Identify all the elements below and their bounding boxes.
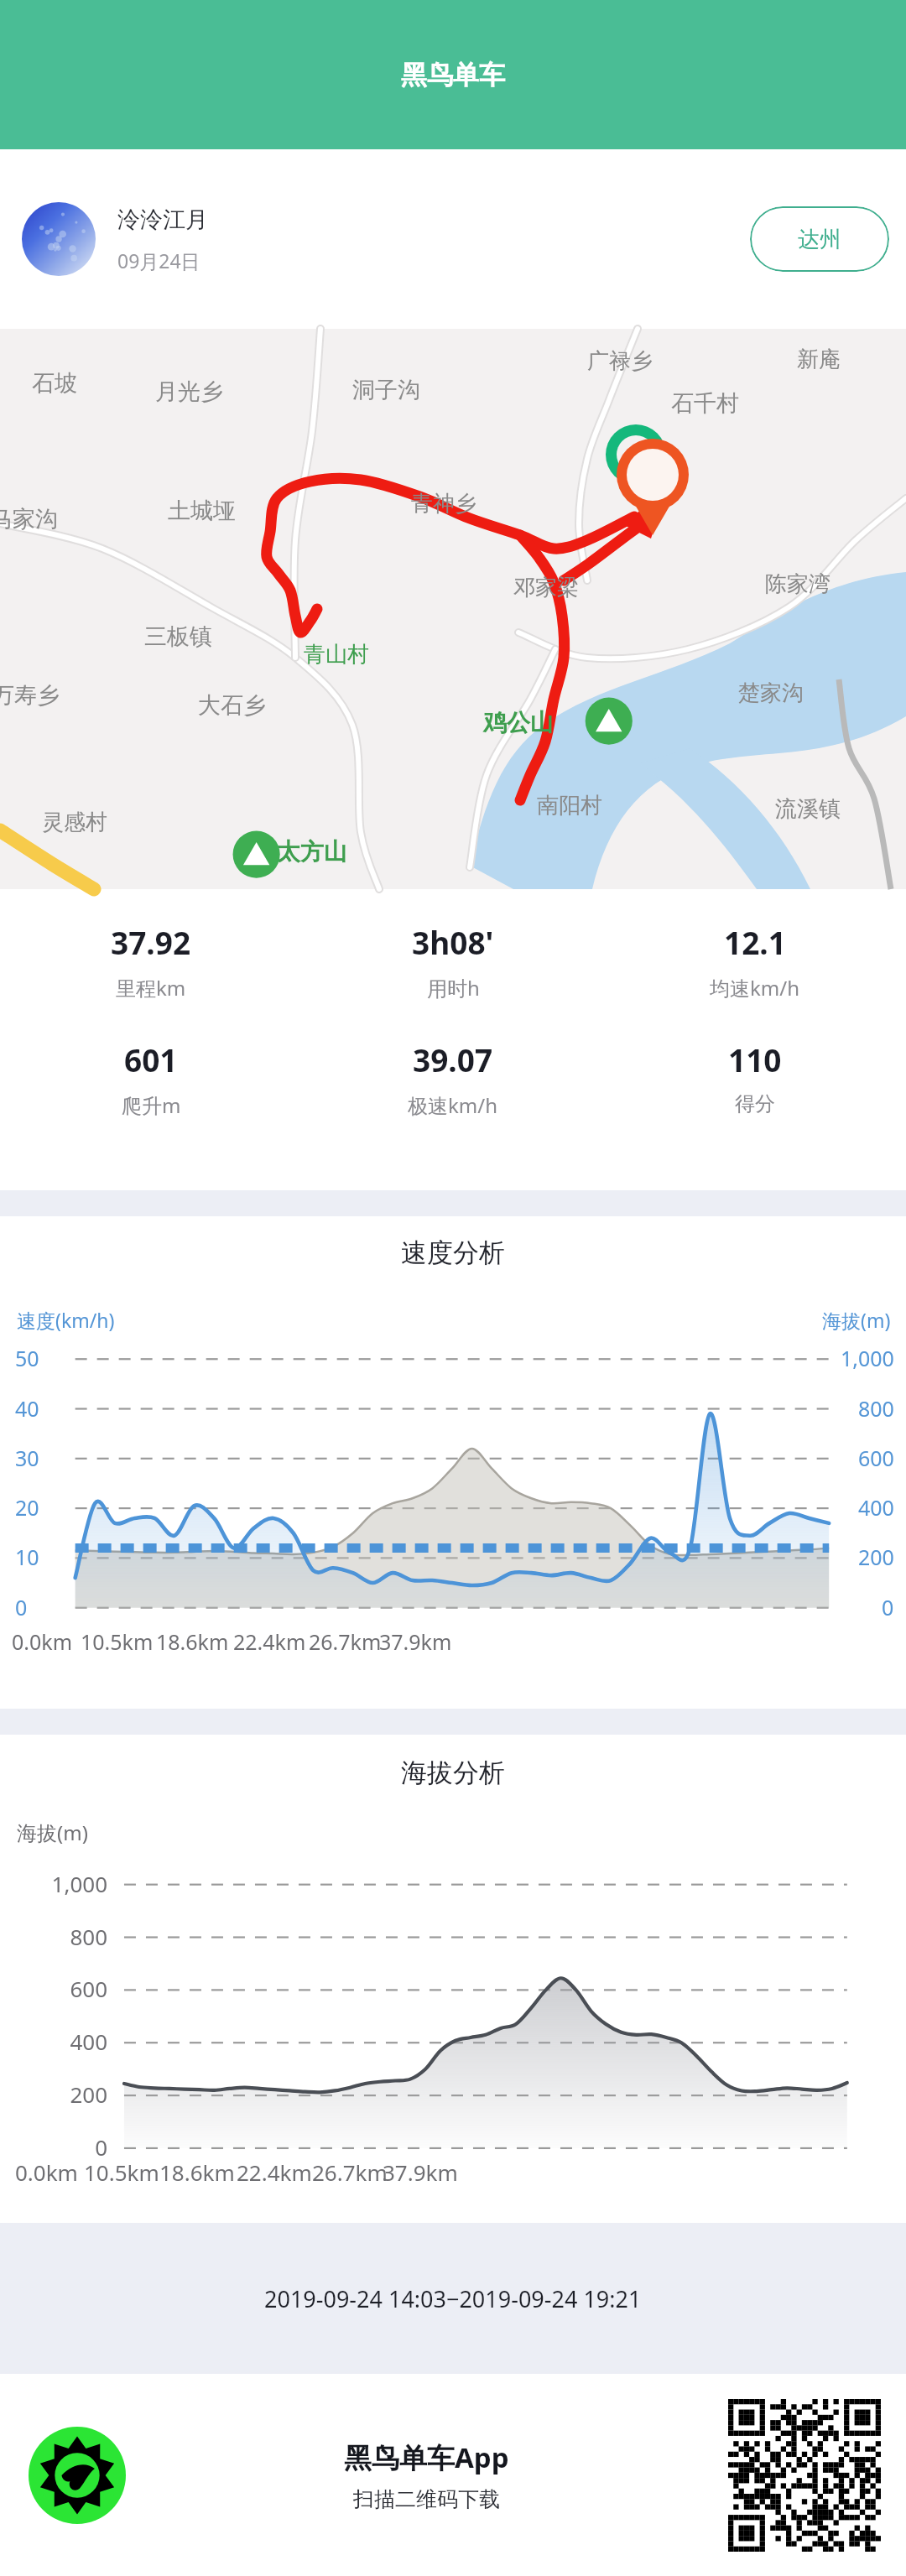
staticText: 10 <box>15 1543 39 1571</box>
staticText: 洞子沟 <box>352 376 420 404</box>
staticText: 0 <box>882 1593 894 1621</box>
staticText: 达州 <box>798 226 841 253</box>
staticText: 37.9km <box>379 1627 452 1656</box>
button[interactable]: 3h08' <box>302 921 604 1002</box>
staticText: 马家沟 <box>0 505 58 533</box>
staticText: 鸡公山 <box>483 708 554 737</box>
staticText: 海拔(m) <box>17 1819 88 1846</box>
button[interactable]: 39.07 <box>302 1038 604 1119</box>
staticText: 大石乡 <box>198 691 266 720</box>
staticText: 陈家湾 <box>765 570 830 598</box>
staticText: 26.7km <box>309 1627 382 1656</box>
staticText: 0.0km <box>12 1627 73 1656</box>
staticText: 泠泠江月 <box>117 206 208 234</box>
staticText: 扫描二维码下载 <box>353 2486 500 2512</box>
other: QR code <box>728 2399 881 2552</box>
staticText: 10.5km <box>84 2157 159 2187</box>
staticText: 均速km/h <box>710 974 800 1002</box>
staticText: 09月24日 <box>117 247 200 273</box>
staticText: 39.07 <box>413 1038 493 1080</box>
staticText: 40 <box>15 1394 39 1423</box>
staticText: 110 <box>728 1038 782 1080</box>
staticText: 800 <box>70 1922 107 1951</box>
staticText: 里程km <box>116 974 186 1002</box>
button[interactable]: 37.92 <box>0 921 302 1002</box>
staticText: 3h08' <box>412 921 494 963</box>
staticText: 爬升m <box>122 1091 181 1119</box>
staticText: 用时h <box>427 974 480 1002</box>
staticText: 400 <box>858 1493 894 1522</box>
staticText: 20 <box>15 1493 39 1522</box>
staticText: 22.4km <box>233 1627 306 1656</box>
staticText: 万寿乡 <box>0 681 60 710</box>
staticText: 1,000 <box>51 1869 107 1898</box>
staticText: 18.6km <box>156 1627 229 1656</box>
staticText: 极速km/h <box>408 1091 498 1119</box>
staticText: 新庵 <box>797 346 841 373</box>
staticText: 广禄乡 <box>587 347 653 375</box>
button[interactable]: App logo <box>29 2427 126 2524</box>
staticText: 600 <box>70 1974 107 2003</box>
staticText: 三板镇 <box>144 622 212 651</box>
staticText: 10.5km <box>81 1627 154 1656</box>
button[interactable]: 达州 <box>750 206 889 272</box>
staticText: 37.9km <box>383 2157 458 2187</box>
staticText: 22.4km <box>237 2157 312 2187</box>
button[interactable]: 601 <box>0 1038 302 1119</box>
staticText: 400 <box>70 2027 107 2056</box>
staticText: 太方山 <box>277 837 347 866</box>
staticText: 26.7km <box>312 2157 388 2187</box>
staticText: 37.92 <box>111 921 191 963</box>
staticText: 流溪镇 <box>775 795 841 823</box>
button[interactable]: 12.1 <box>604 921 906 1002</box>
staticText: 1,000 <box>841 1344 894 1372</box>
staticText: 200 <box>858 1543 894 1571</box>
staticText: 土城垭 <box>168 497 236 525</box>
staticText: 青山村 <box>304 641 369 669</box>
staticText: 青神乡 <box>411 490 476 518</box>
staticText: 黑鸟单车App <box>344 2438 509 2476</box>
staticText: 600 <box>858 1444 894 1472</box>
staticText: 黑鸟单车 <box>401 59 505 91</box>
staticText: 楚家沟 <box>738 679 804 707</box>
staticText: 石千村 <box>671 389 739 418</box>
staticText: 2019-09-24 14:03−2019-09-24 19:21 <box>264 2283 642 2314</box>
staticText: 海拔分析 <box>401 1756 505 1789</box>
staticText: 石坡 <box>32 369 77 398</box>
staticText: 速度分析 <box>401 1236 505 1269</box>
button[interactable]: 石坡 <box>0 329 906 889</box>
staticText: 12.1 <box>724 921 786 963</box>
staticText: 800 <box>858 1394 894 1423</box>
staticText: 月光乡 <box>155 377 223 406</box>
staticText: 海拔(m) <box>822 1307 891 1333</box>
staticText: 601 <box>124 1038 178 1080</box>
staticText: 南阳村 <box>537 792 602 820</box>
staticText: 18.6km <box>159 2157 235 2187</box>
staticText: 200 <box>70 2079 107 2109</box>
staticText: 0.0km <box>15 2157 78 2187</box>
staticText: 速度(km/h) <box>17 1307 115 1333</box>
button[interactable]: 110 <box>604 1038 906 1116</box>
staticText: 邓家梁 <box>513 574 579 601</box>
staticText: 0 <box>15 1593 28 1621</box>
staticText: 0 <box>95 2132 107 2162</box>
staticText: 得分 <box>735 1091 775 1116</box>
staticText: 30 <box>15 1444 39 1472</box>
staticText: 灵感村 <box>42 809 107 836</box>
staticText: 50 <box>15 1344 39 1372</box>
